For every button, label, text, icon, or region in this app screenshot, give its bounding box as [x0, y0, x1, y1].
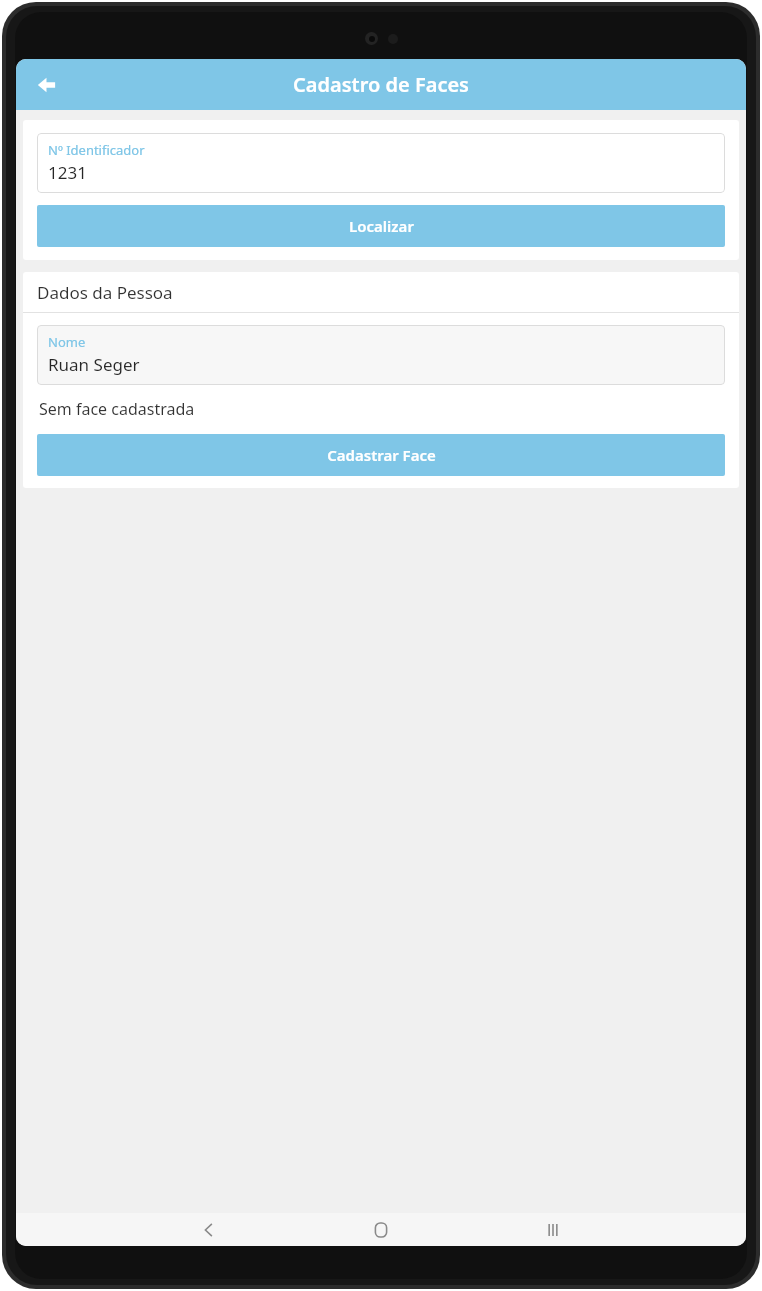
button[interactable]: Recent apps	[467, 1213, 639, 1246]
button[interactable]: Home	[295, 1213, 467, 1246]
button[interactable]: Cadastrar Face	[37, 434, 725, 476]
button[interactable]: Back	[123, 1213, 295, 1246]
button[interactable]: Nome	[37, 325, 725, 385]
staticText: Sem face cadastrada	[39, 398, 195, 420]
button[interactable]: Back	[24, 63, 68, 107]
button[interactable]: Localizar	[37, 205, 725, 247]
button[interactable]: Nº Identificador	[37, 133, 725, 193]
staticText: Cadastro de Faces	[293, 71, 469, 98]
staticText: Nome	[48, 333, 86, 351]
staticText: Ruan Seger	[48, 353, 140, 376]
staticText: Nº Identificador	[48, 141, 145, 159]
staticText: Cadastrar Face	[327, 445, 436, 465]
staticText: Dados da Pessoa	[37, 281, 173, 304]
staticText: 1231	[48, 161, 87, 184]
staticText: Localizar	[349, 216, 414, 236]
